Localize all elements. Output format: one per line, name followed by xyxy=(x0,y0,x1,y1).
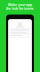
staticText: Make your app xyxy=(8,3,32,7)
staticText: the hub for teams xyxy=(6,6,34,11)
